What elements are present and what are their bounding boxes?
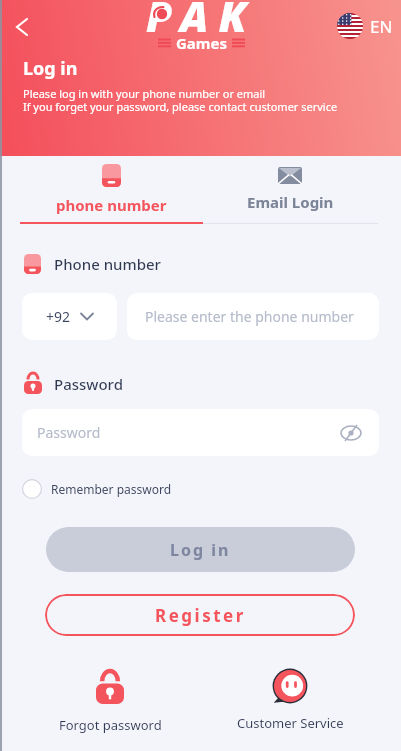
staticText: phone number — [56, 195, 167, 215]
button[interactable]: phone number — [11, 156, 211, 215]
staticText: Password — [37, 423, 101, 442]
staticText: PAK — [146, 0, 257, 43]
button[interactable]: EN — [337, 13, 393, 39]
button[interactable]: +92 — [22, 293, 117, 340]
staticText: Phone number — [54, 254, 161, 274]
staticText: Password — [54, 374, 123, 394]
button[interactable] — [8, 13, 36, 41]
staticText: Remember password — [51, 481, 172, 497]
button[interactable]: Please enter the phone number — [127, 293, 379, 340]
staticText: Please log in with your phone number or … — [23, 86, 266, 101]
staticText: Forgot password — [59, 716, 162, 734]
staticText: EN — [370, 15, 393, 38]
staticText: Customer Service — [237, 714, 344, 732]
button[interactable]: Password — [22, 409, 379, 456]
staticText: +92 — [46, 307, 71, 326]
staticText: Log in — [170, 539, 231, 561]
button[interactable]: Log in — [46, 527, 355, 572]
staticText: Register — [155, 604, 246, 627]
staticText: Log in — [23, 56, 78, 81]
staticText: If you forget your password, please cont… — [23, 99, 338, 114]
button[interactable]: Register — [45, 594, 355, 636]
button[interactable]: Remember password — [22, 479, 172, 499]
staticText: Email Login — [247, 192, 334, 212]
button[interactable]: Email Login — [190, 156, 390, 212]
staticText: Please enter the phone number — [145, 307, 354, 326]
staticText: Games — [176, 33, 227, 53]
button[interactable]: Forgot password — [50, 671, 170, 734]
button[interactable]: Customer Service — [230, 668, 350, 732]
